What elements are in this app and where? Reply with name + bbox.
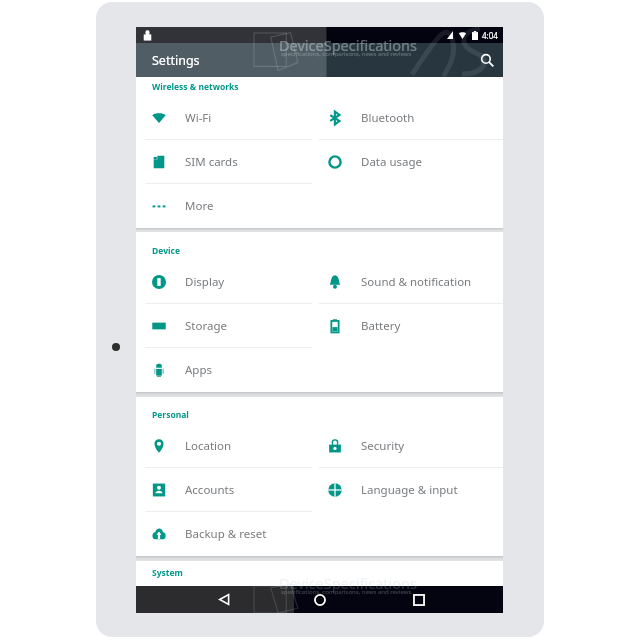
- button[interactable]: Language & input: [316, 468, 503, 512]
- button[interactable]: Bluetooth: [316, 96, 503, 140]
- staticText: Security: [361, 438, 405, 454]
- staticText: DeviceSpecifications: [279, 573, 417, 593]
- button[interactable]: Recents: [399, 586, 438, 613]
- button[interactable]: Search: [472, 45, 502, 75]
- button[interactable]: Wi-Fi: [136, 96, 316, 140]
- staticText: Bluetooth: [361, 110, 415, 126]
- staticText: SIM cards: [185, 154, 238, 170]
- button[interactable]: Location: [136, 424, 316, 468]
- button[interactable]: Apps: [136, 348, 316, 392]
- button[interactable]: Battery: [316, 304, 503, 348]
- button[interactable]: Display: [136, 260, 316, 304]
- button[interactable]: Back: [200, 586, 249, 613]
- staticText: Data usage: [361, 154, 423, 170]
- button[interactable]: SIM cards: [136, 140, 316, 184]
- staticText: Settings: [152, 52, 200, 69]
- staticText: specifications, comparisons, news and re…: [281, 588, 412, 596]
- button[interactable]: Home: [298, 586, 342, 613]
- button[interactable]: Accounts: [136, 468, 316, 512]
- staticText: Personal: [152, 409, 189, 421]
- button[interactable]: Data usage: [316, 140, 503, 184]
- button[interactable]: Storage: [136, 304, 316, 348]
- staticText: Wireless & networks: [152, 81, 239, 93]
- staticText: Apps: [185, 362, 213, 378]
- button[interactable]: More: [136, 184, 316, 228]
- staticText: Storage: [185, 318, 227, 334]
- staticText: Device: [152, 245, 180, 257]
- staticText: Location: [185, 438, 232, 454]
- staticText: 4:04: [482, 30, 498, 41]
- staticText: Backup & reset: [185, 526, 267, 542]
- staticText: Language & input: [361, 482, 458, 498]
- staticText: Sound & notification: [361, 274, 472, 290]
- staticText: Battery: [361, 318, 401, 334]
- staticText: Wi-Fi: [185, 110, 212, 126]
- staticText: specifications, comparisons, news and re…: [281, 50, 412, 58]
- staticText: More: [185, 198, 214, 214]
- button[interactable]: Sound & notification: [316, 260, 503, 304]
- button[interactable]: Security: [316, 424, 503, 468]
- button[interactable]: Backup & reset: [136, 512, 316, 556]
- staticText: DeviceSpecifications: [279, 35, 417, 55]
- staticText: Accounts: [185, 482, 235, 498]
- staticText: Display: [185, 274, 225, 290]
- staticText: System: [152, 567, 183, 579]
